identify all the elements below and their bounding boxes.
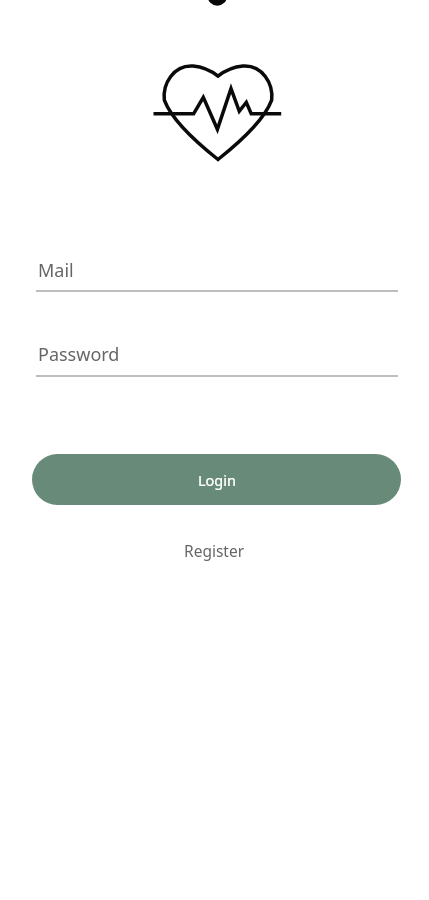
button[interactable]: Login [32,454,401,505]
staticText: Register [184,540,245,561]
button[interactable]: Password [36,334,398,377]
button[interactable]: Mail [36,250,398,292]
staticText: Password [38,342,120,367]
staticText: Mail [38,258,74,283]
button[interactable]: Register [172,532,257,569]
other: Heartbeat logo [145,55,290,167]
staticText: Login [198,470,236,490]
